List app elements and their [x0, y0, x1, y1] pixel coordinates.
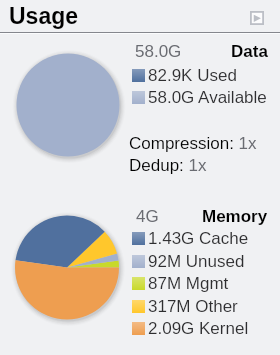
- button[interactable]: 2.09G Kernel: [132, 318, 249, 339]
- staticText: 58.0G: [135, 42, 182, 61]
- staticText: 82.9K Used: [148, 66, 237, 85]
- button[interactable]: 317M Other: [132, 296, 238, 317]
- staticText: Dedup: 1x: [129, 156, 207, 175]
- staticText: 87M Mgmt: [148, 274, 229, 293]
- button[interactable]: Data: [231, 42, 268, 61]
- staticText: Compression: 1x: [129, 134, 257, 153]
- button[interactable]: 87M Mgmt: [132, 273, 229, 294]
- button[interactable]: 1.43G Cache: [132, 228, 249, 249]
- staticText: 1.43G Cache: [148, 229, 249, 248]
- button[interactable]: 82.9K Used: [132, 65, 237, 86]
- button[interactable]: 58.0G Available: [132, 87, 267, 108]
- staticText: 58.0G Available: [148, 88, 267, 107]
- button[interactable]: Memory: [202, 207, 268, 226]
- staticText: 4G: [136, 207, 159, 226]
- button[interactable]: 92M Unused: [132, 251, 245, 272]
- staticText: 92M Unused: [148, 252, 245, 271]
- staticText: 2.09G Kernel: [148, 319, 249, 338]
- staticText: Usage: [9, 3, 79, 29]
- button[interactable]: Expand: [250, 11, 264, 25]
- staticText: 317M Other: [148, 297, 238, 316]
